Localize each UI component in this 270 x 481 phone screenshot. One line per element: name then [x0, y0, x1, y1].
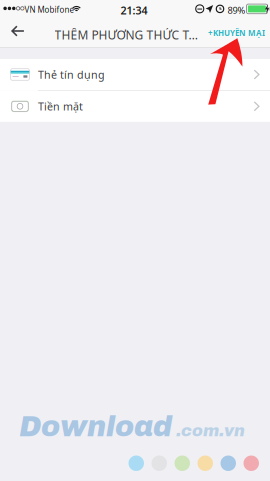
staticText: 21:34 — [120, 3, 147, 17]
button[interactable]: +KHUYẾN MẠI — [208, 18, 265, 48]
staticText: +KHUYẾN MẠI — [208, 28, 265, 38]
button[interactable]: Thẻ tín dụng — [0, 59, 270, 90]
staticText: .com.vn — [176, 422, 245, 440]
staticText: Download — [19, 411, 172, 442]
staticText: THÊM PHƯƠNG THỨC T… — [54, 27, 197, 43]
button[interactable]: Tiền mặt — [0, 91, 270, 122]
staticText: Tiền mặt — [38, 99, 83, 113]
staticText: 89% — [227, 4, 245, 16]
staticText: Thẻ tín dụng — [38, 67, 105, 82]
staticText: VN Mobifone — [24, 4, 74, 15]
button[interactable]: Back — [0, 18, 36, 48]
